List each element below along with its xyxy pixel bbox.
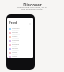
staticText: Morning xyxy=(12,27,20,29)
staticText: Soon xyxy=(12,41,17,43)
staticText: 8:00 am xyxy=(12,29,19,31)
staticText: Updated xyxy=(12,49,19,51)
button[interactable]: Standup xyxy=(7,39,33,43)
button[interactable]: Travel xyxy=(7,35,33,39)
staticText: New issue xyxy=(12,33,21,35)
staticText: For you xyxy=(12,53,18,55)
staticText: 4 new xyxy=(12,45,17,47)
staticText: Photos xyxy=(12,47,18,49)
staticText: Design xyxy=(12,31,18,33)
button[interactable]: Music xyxy=(7,51,33,55)
staticText: Notes xyxy=(12,55,18,57)
staticText: Everything you need, all in one beautifu… xyxy=(17,5,47,11)
staticText: Music xyxy=(12,51,18,53)
staticText: Feed xyxy=(9,20,18,25)
staticText: Reading xyxy=(12,43,20,45)
button[interactable]: Reading xyxy=(7,43,33,47)
button[interactable]: Notes xyxy=(7,55,33,58)
button[interactable]: Design xyxy=(7,31,33,35)
staticText: Travel xyxy=(12,35,18,37)
staticText: Standup xyxy=(12,39,20,41)
staticText: Discover xyxy=(23,2,42,6)
button[interactable]: Photos xyxy=(7,47,33,51)
staticText: 12 saved xyxy=(12,37,19,39)
button[interactable]: Morning xyxy=(7,27,33,31)
